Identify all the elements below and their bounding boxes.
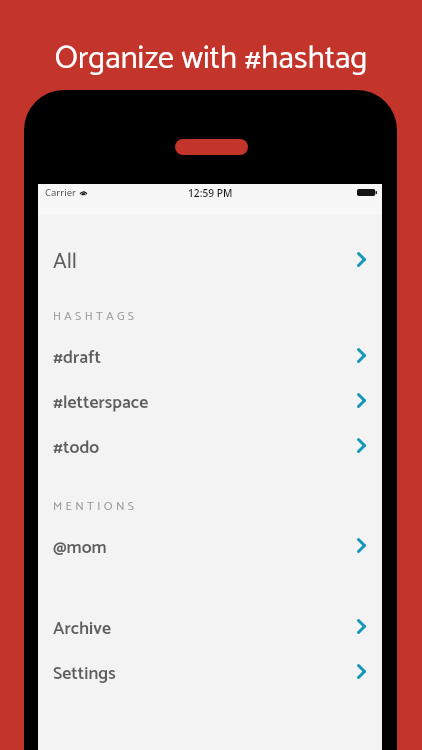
staticText: Archive (53, 614, 111, 643)
button[interactable]: #todo (38, 425, 382, 470)
button[interactable]: #draft (38, 335, 382, 380)
staticText: Settings (53, 659, 116, 688)
staticText: All (53, 244, 77, 280)
staticText: #todo (53, 433, 100, 462)
staticText: #draft (53, 343, 101, 372)
staticText: Carrier (45, 186, 76, 199)
button[interactable]: #letterspace (38, 380, 382, 425)
button[interactable]: Settings (38, 651, 382, 696)
other: Wi-Fi signal (79, 188, 88, 195)
button[interactable]: Archive (38, 606, 382, 651)
staticText: MENTIONS (53, 497, 138, 517)
button[interactable]: @mom (38, 525, 382, 570)
button[interactable]: All (38, 239, 382, 284)
staticText: HASHTAGS (53, 307, 138, 327)
other: Battery full (357, 189, 377, 196)
staticText: @mom (53, 533, 107, 562)
staticText: Organize with #hashtag (0, 33, 422, 85)
staticText: 12:59 PM (188, 186, 233, 200)
staticText: #letterspace (53, 388, 149, 417)
